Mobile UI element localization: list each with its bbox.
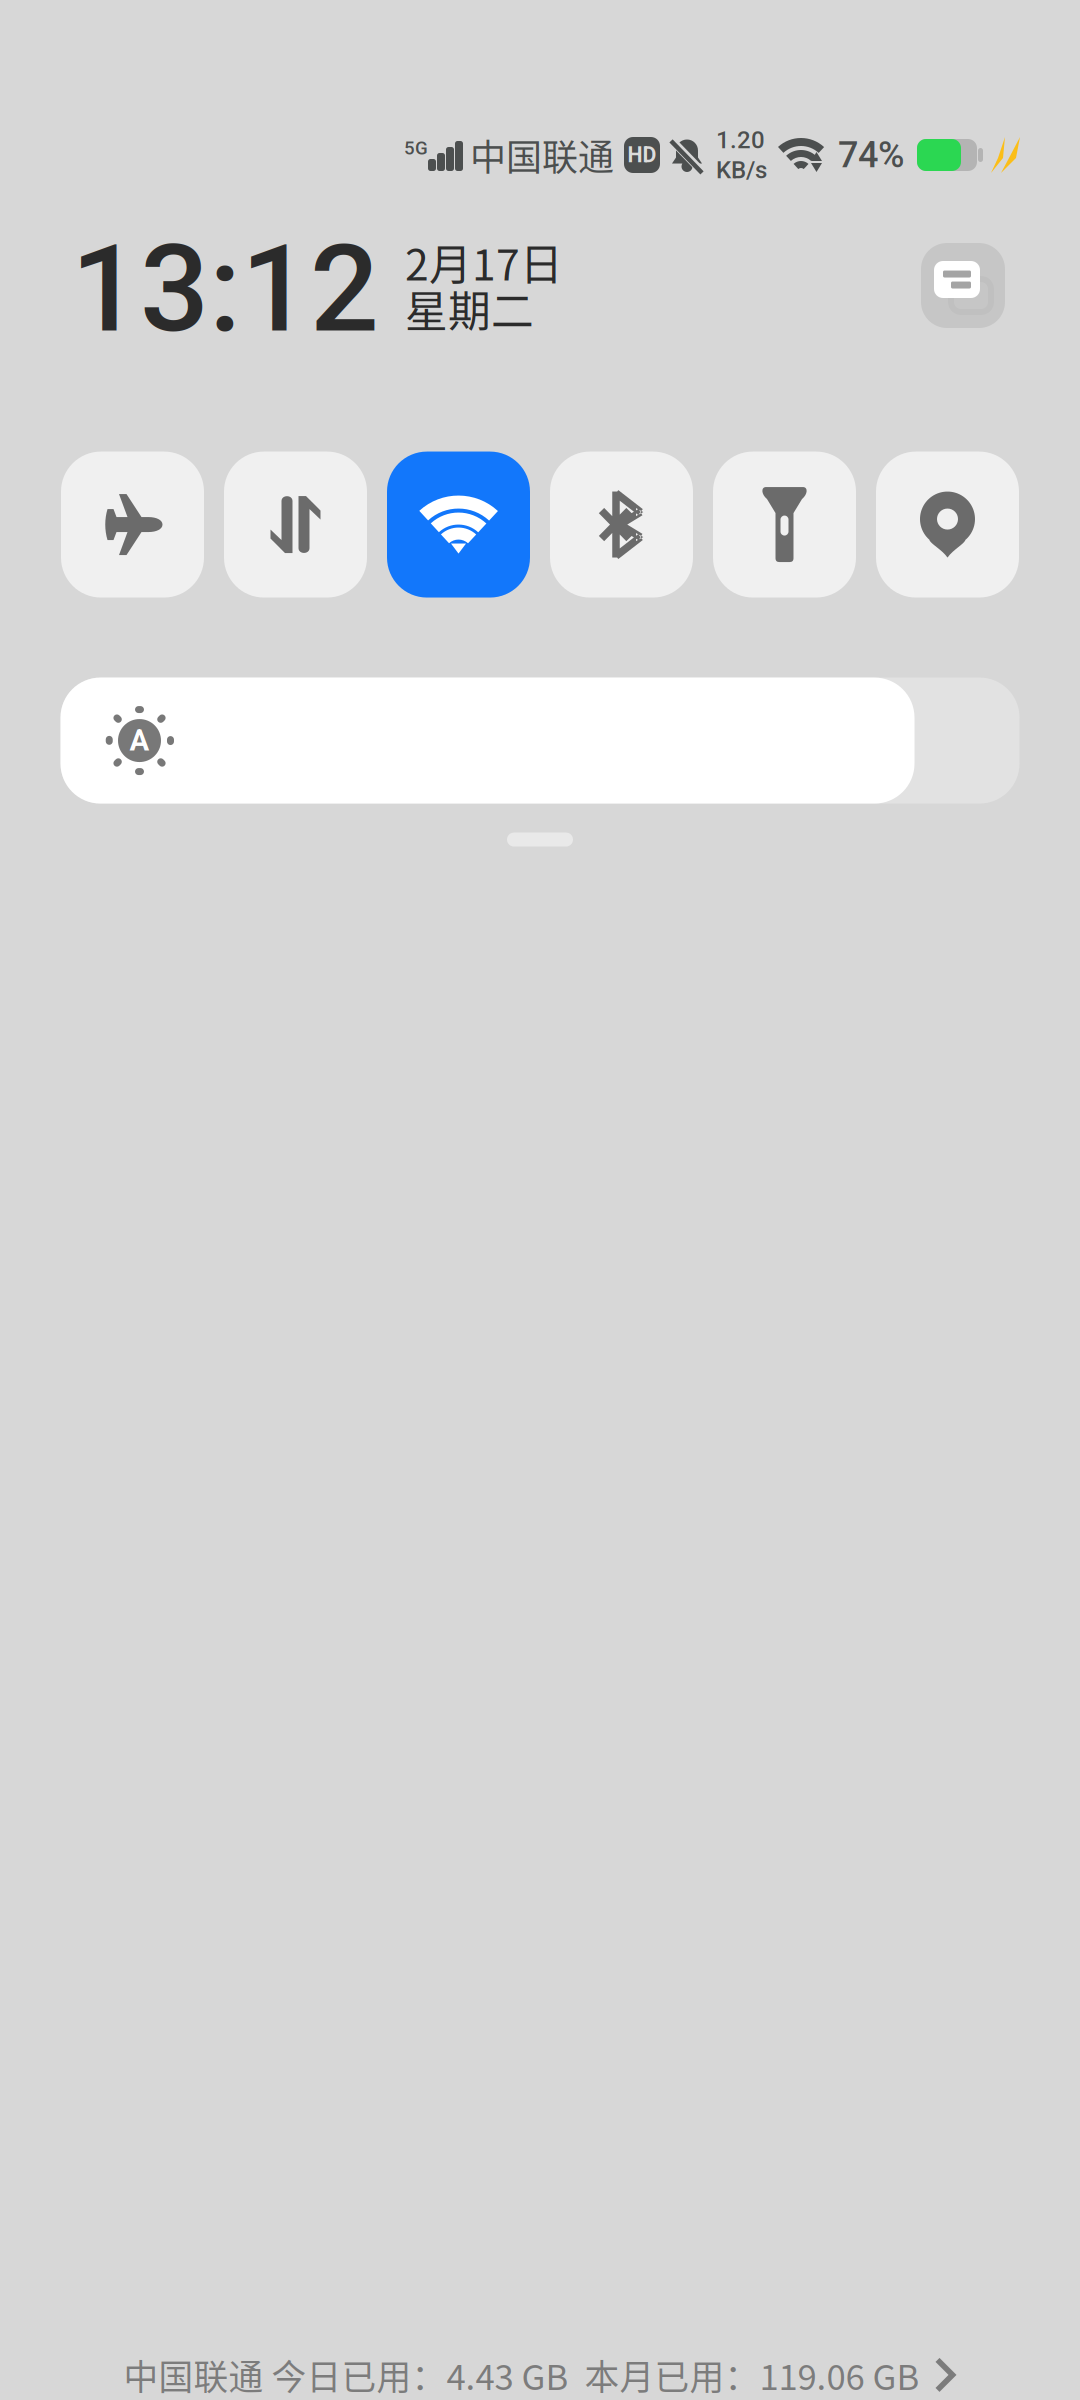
button[interactable]: Brightness bbox=[60, 678, 1019, 804]
staticText: A bbox=[129, 723, 149, 758]
staticText: 74% bbox=[838, 134, 905, 176]
button[interactable]: Airplane mode bbox=[61, 452, 204, 598]
staticText: 中国联通 今日已用：4.43 GB 本月已用：119.06 GB bbox=[123, 2350, 919, 2400]
button[interactable]: Location bbox=[876, 452, 1019, 598]
button[interactable]: Mobile data bbox=[224, 452, 367, 598]
staticText: HD bbox=[627, 142, 656, 167]
staticText: 13:12 bbox=[71, 218, 379, 360]
staticText: 5G bbox=[404, 137, 428, 159]
staticText: KB/s bbox=[716, 156, 767, 184]
button[interactable]: Wi-Fi bbox=[387, 452, 530, 598]
button[interactable]: Notification settings bbox=[921, 243, 1005, 328]
staticText: 中国联通 bbox=[470, 129, 614, 181]
button[interactable]: 中国联通 今日已用：4.43 GB 本月已用：119.06 GB bbox=[123, 2350, 956, 2400]
staticText: 星期二 bbox=[405, 278, 534, 340]
staticText: 1.20 bbox=[716, 126, 765, 154]
button[interactable]: Bluetooth bbox=[550, 452, 693, 598]
staticText: 2月17日 bbox=[405, 231, 563, 293]
button[interactable]: Flashlight bbox=[713, 452, 856, 598]
